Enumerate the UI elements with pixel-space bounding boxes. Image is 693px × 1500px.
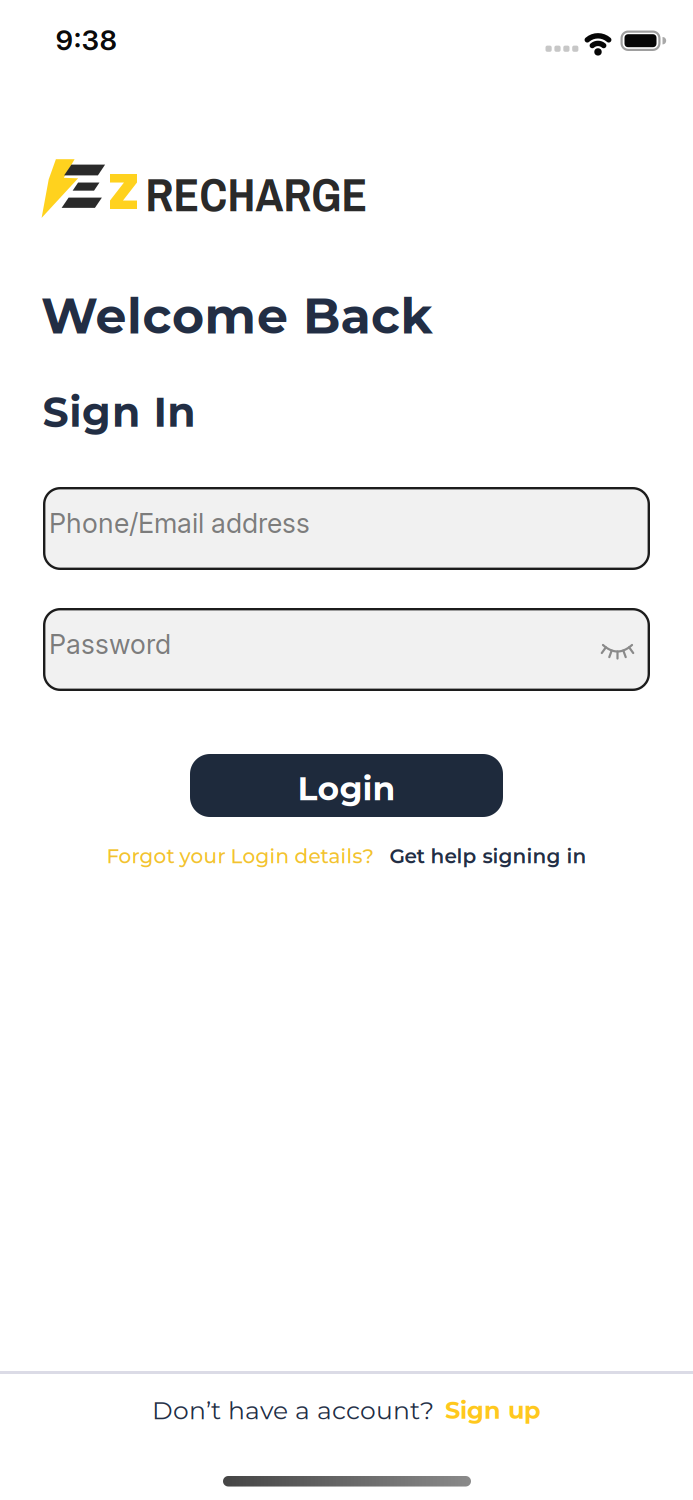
staticText: Forgot your Login details?	[106, 844, 373, 868]
staticText: Phone/Email address	[49, 507, 310, 540]
button[interactable]: Login	[190, 754, 503, 817]
staticText: 9:38	[55, 23, 117, 57]
button[interactable]: Get help signing in	[389, 844, 586, 868]
staticText: Don’t have a account?	[152, 1395, 434, 1425]
staticText: Login	[297, 768, 395, 809]
button[interactable]: Show password	[598, 638, 638, 664]
staticText: Get help signing in	[389, 844, 586, 868]
staticText: Password	[49, 628, 171, 661]
button[interactable]: Sign up	[445, 1396, 541, 1425]
staticText: Welcome Back	[41, 286, 432, 346]
staticText: RECHARGE	[145, 162, 367, 226]
staticText: Sign In	[42, 387, 195, 437]
button[interactable]: Forgot your Login details?	[106, 844, 373, 868]
button[interactable]: Password	[43, 608, 650, 691]
staticText: Sign up	[445, 1396, 541, 1425]
button[interactable]: Phone/Email address	[43, 487, 650, 570]
